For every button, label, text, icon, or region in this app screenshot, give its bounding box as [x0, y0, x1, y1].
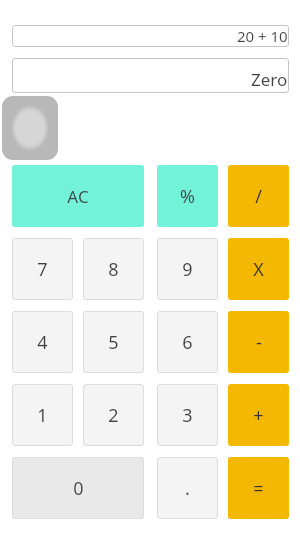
staticText: + — [253, 403, 264, 428]
button[interactable]: 2 — [83, 384, 144, 446]
staticText: Zero — [251, 68, 288, 91]
button[interactable]: X — [228, 238, 289, 300]
staticText: 6 — [182, 330, 193, 355]
staticText: % — [180, 184, 195, 209]
button[interactable]: 7 — [12, 238, 73, 300]
staticText: 1 — [37, 403, 48, 428]
button[interactable]: Zero — [12, 58, 289, 93]
staticText: 3 — [182, 403, 193, 428]
button[interactable]: 9 — [157, 238, 218, 300]
staticText: / — [255, 184, 262, 209]
button[interactable]: 8 — [83, 238, 144, 300]
button[interactable]: + — [228, 384, 289, 446]
staticText: = — [253, 476, 264, 501]
staticText: 7 — [37, 257, 48, 282]
button[interactable]: Image — [2, 96, 58, 160]
button[interactable]: 3 — [157, 384, 218, 446]
staticText: 20 + 10 — [237, 26, 288, 46]
staticText: 8 — [108, 257, 119, 282]
button[interactable]: . — [157, 457, 218, 519]
button[interactable]: - — [228, 311, 289, 373]
staticText: AC — [67, 185, 89, 208]
staticText: 0 — [73, 476, 84, 501]
button[interactable]: 6 — [157, 311, 218, 373]
staticText: 5 — [108, 330, 119, 355]
staticText: . — [185, 476, 190, 501]
staticText: 2 — [108, 403, 119, 428]
button[interactable]: / — [228, 165, 289, 227]
button[interactable]: = — [228, 457, 289, 519]
button[interactable]: 1 — [12, 384, 73, 446]
button[interactable]: AC — [12, 165, 144, 227]
staticText: X — [253, 257, 264, 282]
button[interactable]: 5 — [83, 311, 144, 373]
button[interactable]: 20 + 10 — [12, 25, 289, 47]
button[interactable]: % — [157, 165, 218, 227]
staticText: - — [256, 330, 262, 355]
staticText: 4 — [37, 330, 48, 355]
button[interactable]: 4 — [12, 311, 73, 373]
button[interactable]: 0 — [12, 457, 144, 519]
staticText: 9 — [182, 257, 193, 282]
